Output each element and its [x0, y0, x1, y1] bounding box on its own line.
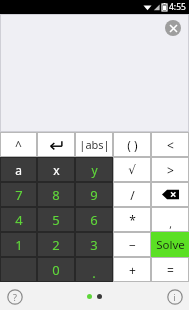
- button[interactable]: −: [113, 232, 151, 257]
- staticText: ,: [169, 217, 172, 231]
- staticText: 5: [52, 211, 60, 229]
- button[interactable]: 3: [75, 232, 113, 257]
- button[interactable]: Backspace: [151, 182, 189, 207]
- button[interactable]: √: [113, 157, 151, 182]
- staticText: >: [167, 162, 174, 178]
- button[interactable]: +: [113, 257, 151, 282]
- staticText: x: [53, 162, 60, 178]
- button[interactable]: Info: [165, 287, 184, 306]
- button[interactable]: 4: [0, 207, 37, 232]
- staticText: i: [173, 291, 176, 303]
- button[interactable]: |abs|: [75, 132, 113, 157]
- button[interactable]: 6: [75, 207, 113, 232]
- button[interactable]: /: [113, 182, 151, 207]
- staticText: 1: [15, 236, 23, 254]
- button[interactable]: <: [151, 132, 189, 157]
- button[interactable]: 7: [0, 182, 37, 207]
- button[interactable]: y: [75, 157, 113, 182]
- button[interactable]: ^: [0, 132, 37, 157]
- button[interactable]: Decimal point: [75, 257, 113, 282]
- staticText: 0: [52, 261, 60, 279]
- staticText: 6: [90, 211, 98, 229]
- button[interactable]: >: [151, 157, 189, 182]
- staticText: 4: [15, 211, 23, 229]
- staticText: *: [129, 212, 136, 228]
- staticText: −: [129, 237, 136, 253]
- button[interactable]: *: [113, 207, 151, 232]
- button[interactable]: Solve: [151, 232, 189, 257]
- staticText: ( ): [127, 137, 138, 153]
- button[interactable]: Enter: [37, 132, 75, 157]
- button[interactable]: =: [151, 257, 189, 282]
- staticText: ?: [13, 291, 17, 303]
- button[interactable]: 2: [37, 232, 75, 257]
- button[interactable]: Comma: [151, 207, 189, 232]
- button[interactable]: a: [0, 157, 37, 182]
- staticText: 3: [90, 236, 98, 254]
- staticText: a: [15, 162, 22, 178]
- staticText: y: [91, 162, 98, 178]
- staticText: Solve: [156, 237, 185, 253]
- button[interactable]: x: [37, 157, 75, 182]
- button[interactable]: 1: [0, 232, 37, 257]
- staticText: /: [130, 187, 135, 203]
- staticText: 4:55: [169, 1, 186, 13]
- staticText: √: [128, 163, 136, 177]
- button[interactable]: [0, 257, 37, 282]
- button[interactable]: 5: [37, 207, 75, 232]
- staticText: <: [167, 137, 174, 153]
- button[interactable]: 9: [75, 182, 113, 207]
- staticText: =: [167, 262, 174, 278]
- button[interactable]: Help: [5, 287, 24, 306]
- staticText: .: [92, 264, 96, 282]
- button[interactable]: Close: [165, 20, 181, 36]
- staticText: 8: [52, 186, 60, 204]
- button[interactable]: 0: [37, 257, 75, 282]
- staticText: 7: [15, 186, 23, 204]
- button[interactable]: 8: [37, 182, 75, 207]
- staticText: 9: [90, 186, 98, 204]
- staticText: 2: [52, 236, 60, 254]
- button[interactable]: ( ): [113, 132, 151, 157]
- staticText: +: [129, 262, 136, 278]
- staticText: ^: [15, 137, 22, 153]
- staticText: |abs|: [79, 137, 110, 152]
